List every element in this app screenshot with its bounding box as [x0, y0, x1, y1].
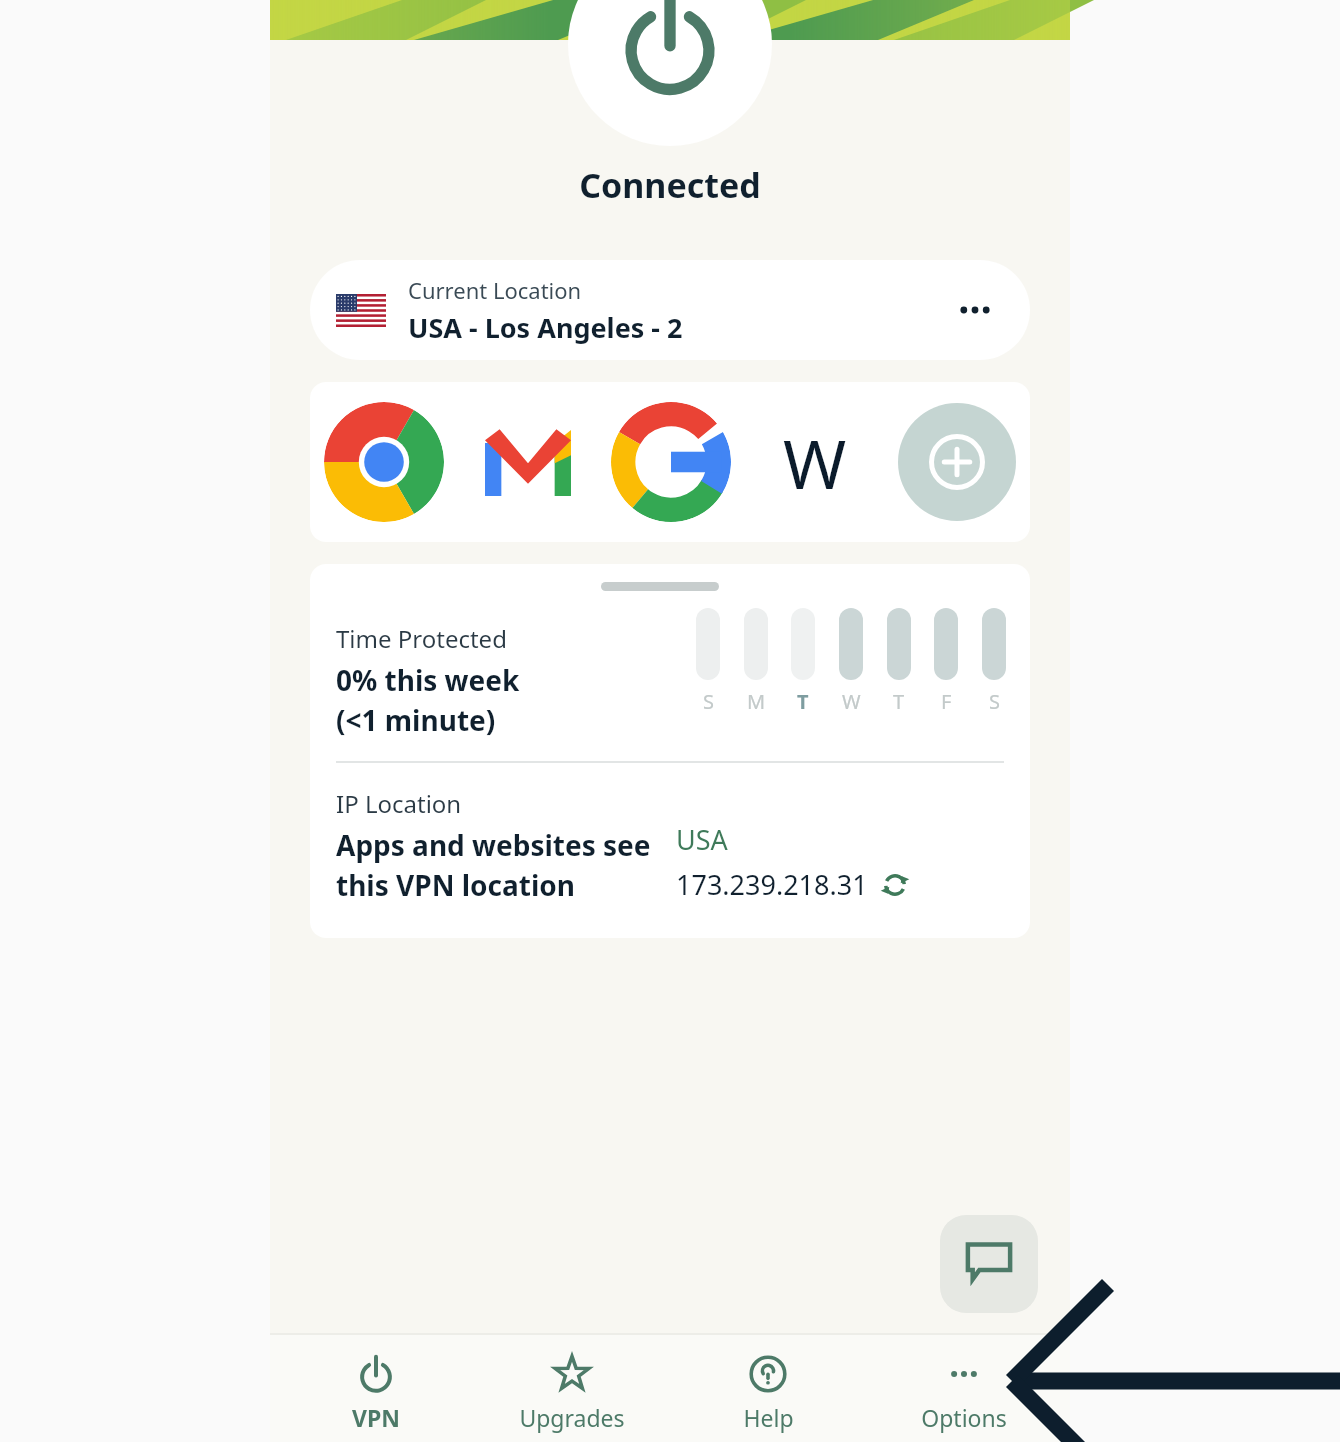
button[interactable]: Wikipedia — [760, 407, 870, 517]
button[interactable]: Add shortcut — [898, 403, 1016, 521]
button[interactable]: Location options — [946, 281, 1004, 339]
button[interactable]: VPN — [286, 1347, 466, 1442]
staticText: W — [783, 416, 847, 509]
staticText: this VPN location — [336, 866, 575, 904]
staticText: T — [797, 688, 809, 715]
button[interactable]: Upgrades — [482, 1347, 662, 1442]
button[interactable]: Help — [678, 1347, 858, 1442]
staticText: Current Location — [408, 275, 582, 305]
staticText: F — [941, 688, 952, 715]
staticText: Time Protected — [336, 622, 507, 655]
staticText: Connected — [270, 162, 1070, 208]
staticText: 173.239.218.31 — [676, 866, 868, 903]
staticText: (<1 minute) — [336, 701, 496, 739]
staticText: Upgrades — [519, 1402, 625, 1433]
staticText: USA — [676, 821, 728, 858]
button[interactable]: Chat support — [940, 1215, 1038, 1313]
staticText: W — [842, 688, 861, 715]
staticText: M — [747, 688, 766, 715]
staticText: T — [893, 688, 905, 715]
button[interactable]: Google — [611, 402, 731, 522]
staticText: Options — [921, 1402, 1007, 1433]
staticText: Help — [743, 1402, 794, 1433]
button[interactable]: Gmail — [473, 407, 583, 517]
button[interactable]: Current Location — [310, 260, 1030, 360]
staticText: S — [989, 688, 1000, 715]
staticText: 0% this week — [336, 661, 520, 699]
button[interactable]: Disconnect VPN — [568, 0, 772, 146]
staticText: Apps and websites see — [336, 826, 651, 864]
button[interactable]: Chrome — [324, 402, 444, 522]
staticText: S — [703, 688, 714, 715]
staticText: VPN — [352, 1402, 400, 1433]
button[interactable]: Refresh IP address — [878, 868, 912, 902]
button[interactable]: Options — [874, 1347, 1054, 1442]
staticText: USA - Los Angeles - 2 — [408, 309, 683, 346]
staticText: IP Location — [336, 787, 462, 820]
